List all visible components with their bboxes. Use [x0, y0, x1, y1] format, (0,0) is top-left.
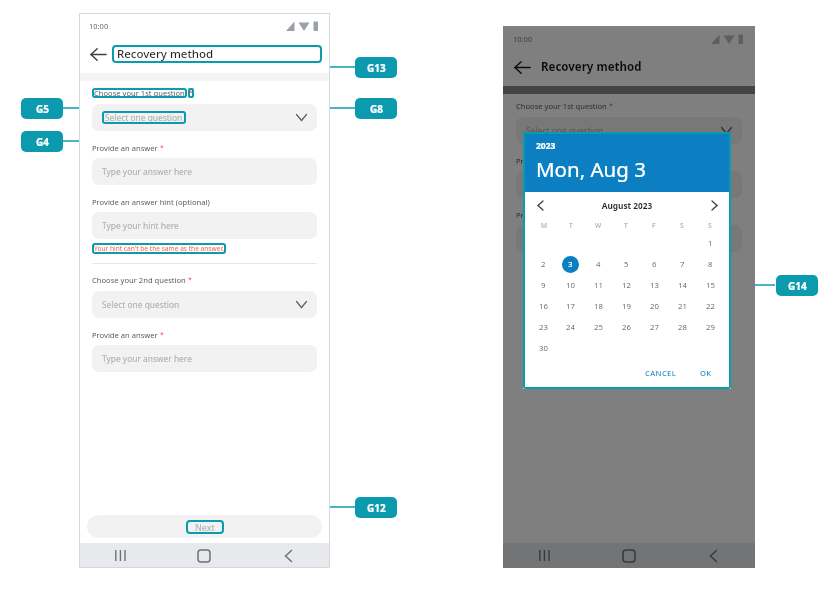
button[interactable]: 25	[590, 319, 607, 336]
button[interactable]: 22	[702, 298, 719, 315]
button[interactable]: 7	[674, 256, 691, 273]
staticText: W	[595, 221, 602, 230]
button[interactable]: 3	[562, 256, 579, 273]
staticText: *	[160, 330, 164, 340]
staticText: G4	[36, 135, 49, 149]
button[interactable]: Type your answer here	[516, 171, 742, 198]
staticText: Choose your 1st question	[516, 101, 607, 111]
button[interactable]: Type your hint here	[92, 212, 317, 239]
staticText: S	[708, 221, 712, 230]
staticText: Provide an answer hint (optional)	[516, 210, 634, 220]
staticText: 14	[678, 280, 687, 291]
button[interactable]: 16	[535, 298, 552, 315]
button[interactable]: 5	[618, 256, 635, 273]
button[interactable]: G14	[776, 275, 818, 296]
staticText: 20	[650, 301, 659, 312]
button[interactable]: 2	[535, 256, 552, 273]
button[interactable]: Previous month	[532, 197, 548, 213]
button[interactable]: 20	[646, 298, 663, 315]
button[interactable]: Type your hint here	[516, 225, 742, 252]
button[interactable]: Back	[246, 543, 330, 568]
staticText: Choose your 1st question	[94, 88, 185, 98]
button[interactable]: Select one question	[92, 291, 317, 318]
staticText: 16	[539, 301, 548, 312]
staticText: 26	[622, 322, 631, 333]
button[interactable]: Recents	[79, 543, 162, 568]
staticText: Type your answer here	[102, 166, 192, 177]
button[interactable]: 13	[646, 277, 663, 294]
button[interactable]: Back	[88, 44, 108, 64]
staticText: Select one question	[105, 112, 183, 123]
button[interactable]: G5	[21, 98, 63, 119]
button[interactable]: 27	[646, 319, 663, 336]
staticText: Type your hint here	[102, 220, 179, 231]
button[interactable]: G12	[355, 497, 397, 518]
button[interactable]: 9	[535, 277, 552, 294]
button[interactable]: 11	[590, 277, 607, 294]
staticText: G8	[370, 102, 383, 116]
button[interactable]: 24	[562, 319, 579, 336]
staticText: 2023	[536, 140, 556, 152]
button[interactable]: Home	[162, 543, 246, 568]
button[interactable]: 10	[562, 277, 579, 294]
staticText: 3	[568, 259, 573, 270]
staticText: *	[160, 143, 164, 153]
button[interactable]: Recents	[503, 543, 587, 568]
staticText: 28	[678, 322, 687, 333]
staticText: *	[189, 88, 193, 98]
staticText: 8	[708, 259, 713, 270]
staticText: 23	[539, 322, 548, 333]
button[interactable]: 8	[702, 256, 719, 273]
button[interactable]: G13	[355, 57, 397, 78]
button[interactable]: Type your answer here	[92, 158, 317, 185]
staticText: Mon, Aug 3	[536, 155, 646, 183]
staticText: 13	[650, 280, 659, 291]
button[interactable]: 1	[702, 235, 719, 252]
staticText: 11	[594, 280, 603, 291]
staticText: Type your answer here	[526, 179, 616, 190]
button[interactable]: 17	[562, 298, 579, 315]
staticText: 10	[566, 280, 575, 291]
button[interactable]: 18	[590, 298, 607, 315]
staticText: Recovery method	[541, 59, 642, 75]
button[interactable]: 26	[618, 319, 635, 336]
staticText: 10:00	[89, 21, 109, 31]
button[interactable]: 30	[535, 340, 552, 357]
button[interactable]: 4	[590, 256, 607, 273]
button[interactable]: Select one question	[92, 104, 317, 131]
button[interactable]: G8	[355, 98, 397, 119]
staticText: 9	[541, 280, 546, 291]
staticText: 1	[708, 238, 713, 249]
staticText: T	[569, 221, 573, 230]
button[interactable]: 6	[646, 256, 663, 273]
button[interactable]: Back	[512, 57, 532, 77]
staticText: 4	[596, 259, 601, 270]
button[interactable]: Back	[671, 543, 755, 568]
staticText: Provide an answer hint (optional)	[92, 197, 210, 207]
button[interactable]: 29	[702, 319, 719, 336]
button[interactable]: 12	[618, 277, 635, 294]
button[interactable]: Next	[87, 515, 322, 538]
button[interactable]: Select one question	[516, 117, 742, 144]
button[interactable]: Type your answer here	[92, 345, 317, 372]
staticText: 12	[622, 280, 631, 291]
staticText: Select one question	[102, 299, 180, 310]
button[interactable]: Next month	[706, 197, 722, 213]
button[interactable]: CANCEL	[639, 365, 683, 381]
staticText: 19	[622, 301, 631, 312]
staticText: *	[609, 101, 613, 111]
button[interactable]: OK	[694, 365, 718, 381]
staticText: 6	[652, 259, 657, 270]
button[interactable]: 23	[535, 319, 552, 336]
button[interactable]: 19	[618, 298, 635, 315]
button[interactable]: 21	[674, 298, 691, 315]
button[interactable]: 14	[674, 277, 691, 294]
staticText: M	[541, 221, 547, 230]
button[interactable]: 28	[674, 319, 691, 336]
button[interactable]: Home	[587, 543, 671, 568]
button[interactable]: G4	[21, 131, 63, 152]
button[interactable]: 15	[702, 277, 719, 294]
staticText: G12	[367, 501, 386, 515]
